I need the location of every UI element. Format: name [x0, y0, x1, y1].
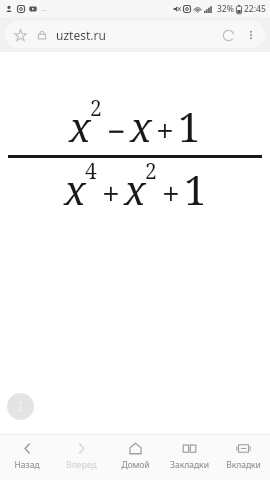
button[interactable]: Вкладки	[216, 435, 270, 480]
staticText: Вкладки	[226, 459, 261, 471]
staticText: 1	[178, 99, 201, 153]
button[interactable]: Домой	[108, 435, 162, 480]
button[interactable]: Site security info	[31, 24, 53, 46]
staticText: x	[69, 99, 91, 153]
staticText: −	[107, 109, 126, 153]
button[interactable]: Menu	[240, 24, 262, 46]
staticText: ...	[41, 5, 46, 13]
staticText: +	[156, 109, 174, 153]
staticText: +	[102, 172, 120, 216]
button[interactable]: Назад	[0, 435, 54, 480]
button[interactable]: Закладки	[162, 435, 216, 480]
staticText: Вперед	[66, 459, 97, 471]
staticText: Назад	[14, 459, 40, 471]
staticText: 2	[145, 157, 157, 186]
button[interactable]: uztest.ru	[56, 27, 216, 43]
staticText: 1	[184, 162, 207, 216]
button[interactable]: Reload	[216, 23, 240, 47]
staticText: 4	[85, 157, 97, 186]
staticText: x	[64, 162, 86, 216]
staticText: Домой	[121, 459, 150, 471]
staticText: 22:45	[244, 3, 266, 15]
button[interactable]: Вперед	[54, 435, 108, 480]
staticText: Закладки	[170, 459, 209, 471]
staticText: 32%	[217, 3, 234, 15]
staticText: x	[124, 162, 146, 216]
staticText: 2	[90, 94, 102, 123]
staticText: x	[130, 99, 152, 153]
button[interactable]: More options	[7, 393, 34, 420]
staticText: +	[162, 172, 180, 216]
button[interactable]: Bookmark	[9, 24, 31, 46]
